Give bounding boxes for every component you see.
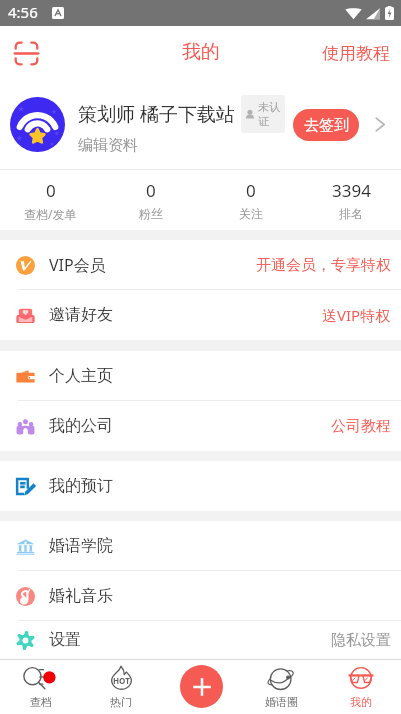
button[interactable]: Scan QR code <box>4 31 48 75</box>
staticText: 我的 <box>182 40 220 64</box>
staticText: 排名 <box>339 206 363 221</box>
button[interactable]: 我的 <box>321 659 401 714</box>
button[interactable]: 个人主页 <box>0 351 401 401</box>
staticText: 0 <box>46 179 56 202</box>
staticText: 策划师 橘子下载站 <box>78 101 235 127</box>
staticText: 4:56 <box>8 2 38 22</box>
staticText: 粉丝 <box>139 206 163 221</box>
button[interactable]: HOT <box>81 659 161 714</box>
button[interactable]: 我的预订 <box>0 461 401 511</box>
button[interactable]: 策划师 橘子下载站 <box>0 80 401 169</box>
staticText: 未认 证 <box>258 100 280 128</box>
staticText: 邀请好友 <box>49 305 113 325</box>
staticText: 送VIP特权 <box>322 305 391 325</box>
button[interactable]: VIP会员 <box>0 240 401 290</box>
staticText: 0 <box>146 179 156 202</box>
button[interactable]: 使用教程 <box>312 35 401 72</box>
button[interactable]: 婚礼音乐 <box>0 571 401 621</box>
staticText: VIP会员 <box>49 254 106 276</box>
button[interactable]: 设置 <box>0 621 401 659</box>
button[interactable]: 查档 <box>0 659 81 714</box>
staticText: 隐私设置 <box>331 631 391 650</box>
staticText: 3394 <box>332 179 371 202</box>
button[interactable]: 0 <box>101 170 201 230</box>
staticText: 查档/发单 <box>24 206 77 222</box>
button[interactable]: 0 <box>201 170 301 230</box>
staticText: 开通会员，专享特权 <box>256 256 391 275</box>
button[interactable]: 3394 <box>301 170 401 230</box>
staticText: 设置 <box>49 630 81 650</box>
staticText: 0 <box>246 179 256 202</box>
staticText: 公司教程 <box>331 417 391 436</box>
staticText: 婚语圈 <box>265 695 298 709</box>
staticText: 我的预订 <box>49 476 113 496</box>
staticText: 去签到 <box>304 116 349 135</box>
staticText: 查档 <box>30 695 52 709</box>
staticText: 婚礼音乐 <box>49 586 113 606</box>
staticText: 编辑资料 <box>78 136 138 155</box>
button[interactable]: 婚语学院 <box>0 521 401 571</box>
staticText: 热门 <box>110 695 132 709</box>
staticText: 婚语学院 <box>49 536 113 556</box>
button[interactable]: 0 <box>0 170 101 230</box>
staticText: HOT <box>113 675 130 686</box>
button[interactable]: 我的公司 <box>0 401 401 451</box>
staticText: 我的 <box>350 695 372 709</box>
button[interactable]: Create new post <box>180 665 223 708</box>
button[interactable]: 去签到 <box>293 109 359 141</box>
staticText: 关注 <box>239 206 263 221</box>
button[interactable]: 婚语圈 <box>241 659 321 714</box>
staticText: 我的公司 <box>49 416 113 436</box>
button[interactable]: 邀请好友 <box>0 290 401 340</box>
staticText: 个人主页 <box>49 366 113 386</box>
staticText: 使用教程 <box>322 43 390 64</box>
